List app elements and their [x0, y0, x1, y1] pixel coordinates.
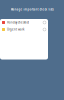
staticText: Urgent work: [7, 28, 24, 31]
staticText: Manage important check lists: [10, 8, 53, 11]
staticText: Holiday checklist: [7, 21, 29, 24]
